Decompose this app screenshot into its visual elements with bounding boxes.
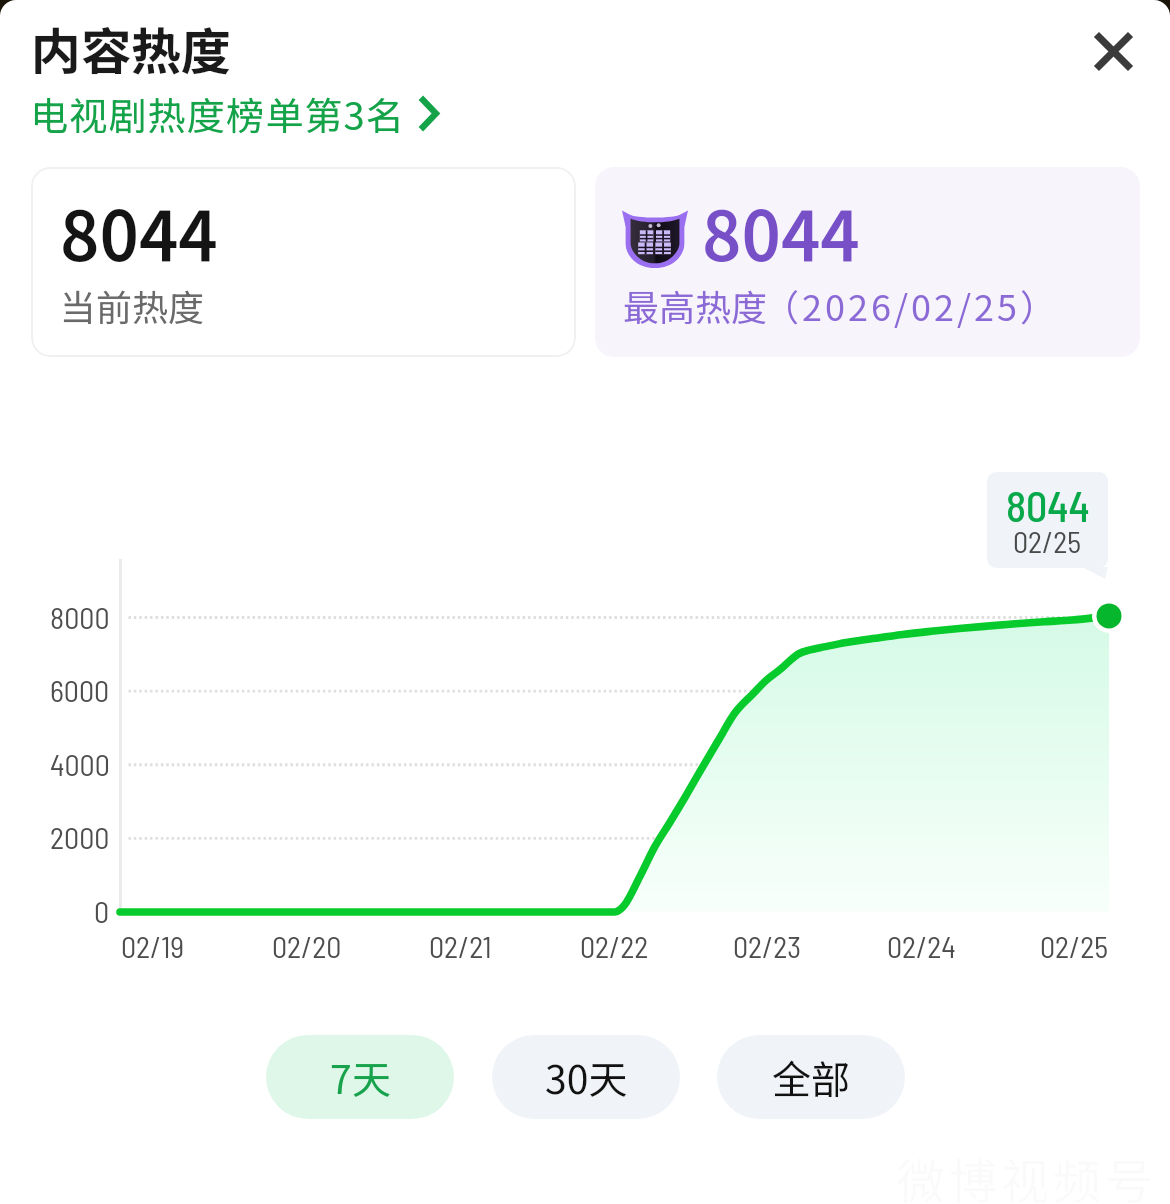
button[interactable]: 全部 [717,1035,905,1119]
staticText: 全部 [772,1049,851,1105]
staticText: 电视剧热度榜单第3名 [30,86,406,141]
staticText: 8000 [50,599,110,635]
button[interactable]: 8044 [31,167,576,357]
staticText: 6000 [50,672,110,708]
button[interactable]: 8044 [595,167,1140,357]
staticText: 02/25 [1013,523,1082,557]
staticText: 02/24 [887,928,956,964]
staticText: 02/25 [1040,928,1109,964]
staticText: 0 [94,893,110,929]
staticText: 内容热度 [31,12,231,84]
button[interactable]: 30天 [492,1035,680,1119]
staticText: 02/21 [429,928,492,964]
staticText: 当前热度 [60,279,205,331]
staticText: 8044 [702,182,860,280]
staticText: 4000 [50,746,110,782]
staticText: 02/23 [733,928,802,964]
staticText: 2000 [50,819,110,855]
staticText: 02/19 [121,928,185,964]
staticText: 30天 [545,1049,628,1105]
staticText: 7天 [330,1049,391,1105]
button[interactable]: 电视剧热度榜单第3名 [28,83,441,144]
staticText: 8044 [1006,480,1090,522]
staticText: 最高热度 [623,279,768,331]
staticText: （2026/02/25） [763,279,1060,331]
staticText: 02/20 [272,928,342,964]
staticText: 8044 [60,182,218,280]
staticText: 02/22 [580,928,649,964]
button[interactable]: 7天 [266,1035,454,1119]
button[interactable]: 关闭 [1066,4,1160,98]
